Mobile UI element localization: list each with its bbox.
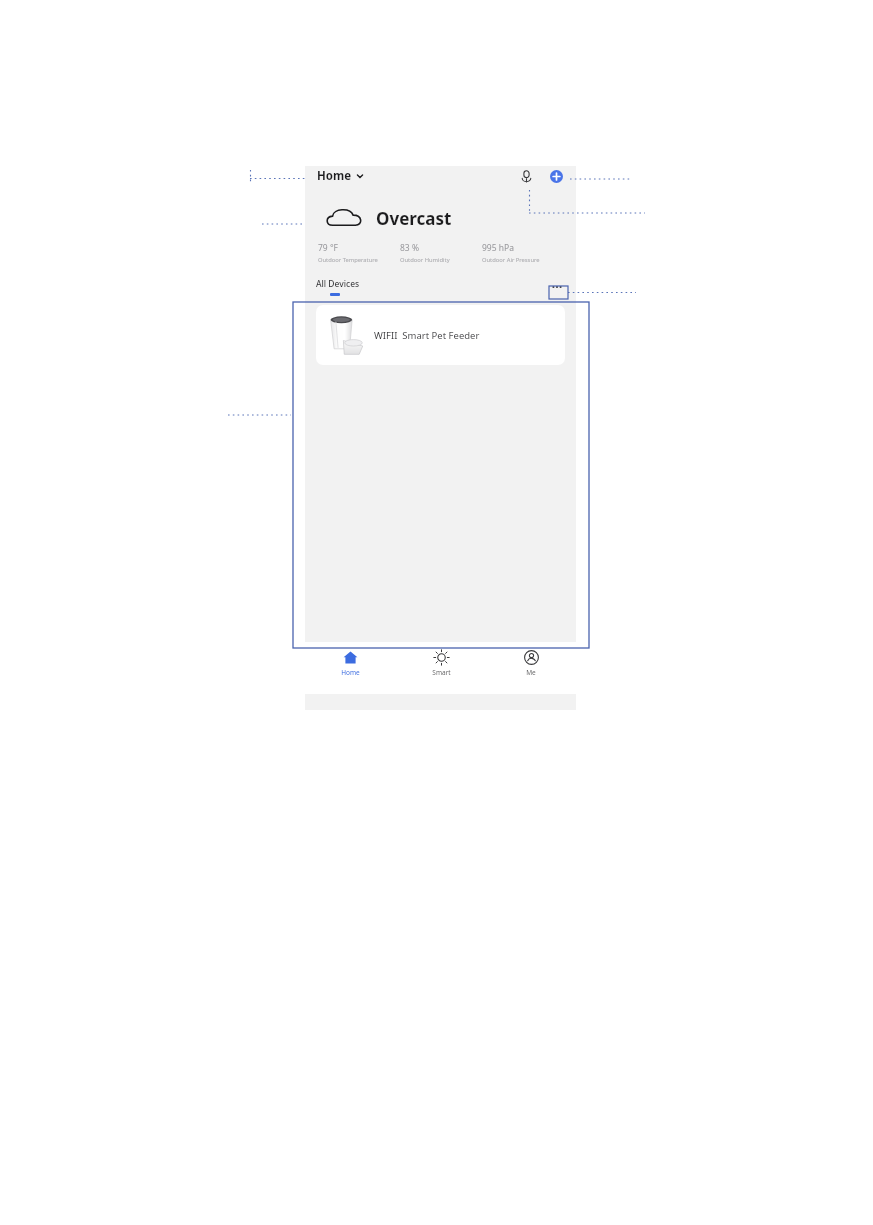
staticText: Outdoor Temperature bbox=[318, 256, 378, 264]
staticText: 83 % bbox=[400, 242, 419, 254]
staticText: Smart bbox=[432, 668, 451, 677]
button[interactable]: Add device bbox=[546, 166, 566, 186]
staticText: Outdoor Air Pressure bbox=[482, 256, 540, 264]
button[interactable]: WIFII Smart Pet Feeder bbox=[316, 305, 565, 365]
button[interactable]: Voice assistant bbox=[516, 166, 536, 186]
button[interactable]: Home bbox=[305, 642, 396, 677]
button[interactable]: Home bbox=[315, 166, 366, 186]
staticText: WIFII Smart Pet Feeder bbox=[374, 329, 480, 342]
staticText: 995 hPa bbox=[482, 242, 514, 254]
staticText: Overcast bbox=[376, 207, 452, 230]
staticText: All Devices bbox=[316, 278, 360, 290]
staticText: Me bbox=[526, 668, 536, 677]
button[interactable]: More options bbox=[548, 281, 566, 293]
button[interactable]: Me bbox=[486, 642, 576, 677]
button[interactable]: All Devices bbox=[316, 278, 360, 296]
staticText: Outdoor Humidity bbox=[400, 256, 450, 264]
button[interactable]: Smart bbox=[396, 642, 486, 677]
button[interactable]: Overcast bbox=[305, 192, 576, 278]
staticText: Home bbox=[317, 168, 352, 184]
staticText: 79 °F bbox=[318, 242, 338, 254]
staticText: Home bbox=[341, 668, 360, 677]
